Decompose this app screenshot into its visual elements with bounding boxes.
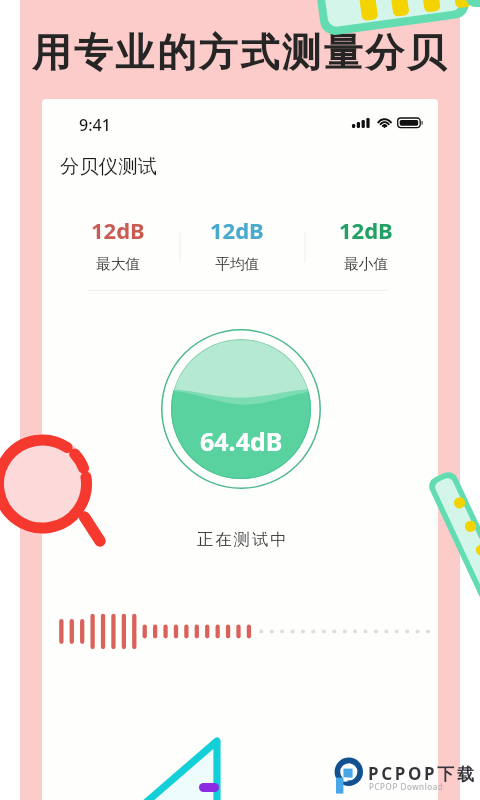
staticText: 12dB bbox=[339, 215, 393, 245]
staticText: 用专业的方式测量分贝 bbox=[32, 28, 449, 77]
staticText: PCPOP下载 bbox=[368, 762, 477, 785]
button[interactable]: 12dB bbox=[68, 215, 168, 273]
staticText: 64.4dB bbox=[200, 424, 283, 458]
staticText: 12dB bbox=[210, 215, 264, 245]
staticText: 正在测试中 bbox=[197, 529, 289, 550]
staticText: 最小值 bbox=[344, 255, 389, 273]
staticText: 最大值 bbox=[96, 255, 141, 273]
staticText: PCPOP Download bbox=[369, 781, 444, 792]
staticText: 平均值 bbox=[215, 255, 260, 273]
button[interactable]: 12dB bbox=[316, 215, 416, 273]
button[interactable]: PCPOP download bbox=[333, 754, 479, 794]
button[interactable]: Decibel level bbox=[161, 329, 321, 489]
staticText: 9:41 bbox=[79, 114, 111, 136]
staticText: 分贝仪测试 bbox=[60, 154, 157, 178]
staticText: 12dB bbox=[91, 215, 145, 245]
button[interactable]: 12dB bbox=[187, 215, 287, 273]
